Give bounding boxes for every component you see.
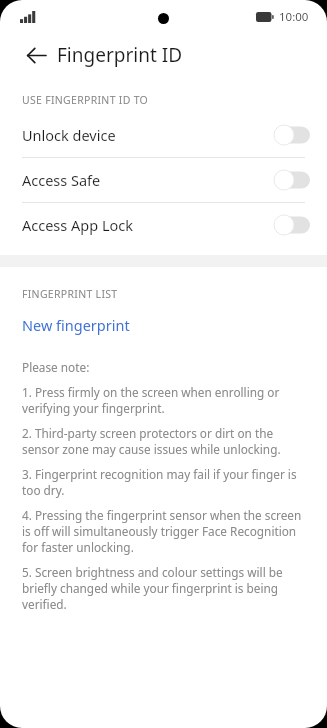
button[interactable]: Access Safe — [0, 158, 327, 202]
staticText: 5. Screen brightness and colour settings… — [22, 564, 303, 612]
staticText: Access App Lock — [22, 215, 274, 235]
staticText: 10:00 — [279, 9, 309, 25]
staticText: 1. Press firmly on the screen when enrol… — [22, 384, 303, 416]
staticText: Unlock device — [22, 125, 274, 145]
staticText: Access Safe — [22, 170, 274, 190]
staticText: USE FINGERPRINT ID TO — [22, 93, 149, 107]
button[interactable]: Back — [14, 33, 58, 77]
button[interactable]: Access App Lock — [0, 203, 327, 247]
staticText: 3. Fingerprint recognition may fail if y… — [22, 466, 303, 498]
staticText: 4. Pressing the fingerprint sensor when … — [22, 507, 303, 555]
staticText: Please note: — [22, 359, 303, 375]
staticText: FINGERPRINT LIST — [22, 287, 118, 301]
staticText: Fingerprint ID — [57, 42, 183, 68]
button[interactable]: Unlock device — [0, 113, 327, 157]
button[interactable]: New fingerprint — [0, 307, 327, 345]
staticText: New fingerprint — [22, 315, 130, 335]
staticText: 2. Third-party screen protectors or dirt… — [22, 425, 303, 457]
